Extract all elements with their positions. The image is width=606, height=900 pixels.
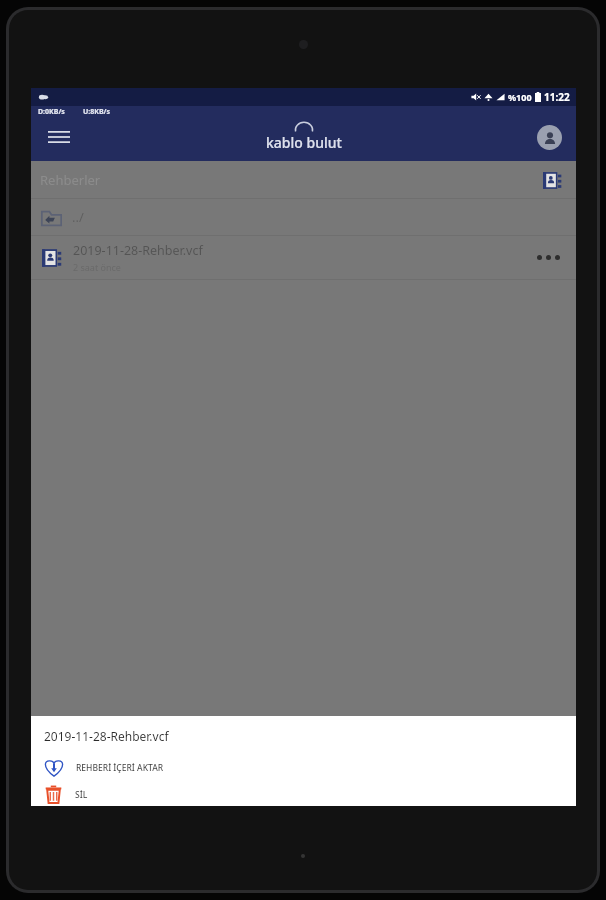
staticText: REHBERİ İÇERİ AKTAR — [76, 762, 164, 774]
staticText: %100 — [508, 91, 532, 103]
staticText: kablo bulut — [266, 133, 342, 152]
staticText: Rehberler — [40, 171, 101, 189]
staticText: 2 saat önce — [73, 261, 121, 273]
staticText: 2019-11-28-Rehber.vcf — [73, 242, 203, 259]
staticText: 11:22 — [544, 90, 570, 104]
button[interactable]: ../ — [31, 199, 576, 235]
button[interactable]: Menü — [39, 117, 79, 157]
staticText: U:8KB/s — [83, 107, 110, 117]
button[interactable]: REHBERİ İÇERİ AKTAR — [31, 753, 576, 783]
button[interactable]: Profil — [532, 120, 566, 154]
button[interactable]: kablo bulut — [266, 121, 342, 152]
staticText: 2019-11-28-Rehber.vcf — [44, 728, 169, 744]
button[interactable]: Rehber ekle — [537, 165, 567, 195]
button[interactable]: Daha fazla — [528, 236, 568, 279]
button[interactable]: 2019-11-28-Rehber.vcf — [31, 236, 576, 279]
staticText: D:0KB/s — [38, 107, 65, 117]
button[interactable]: SİL — [31, 783, 576, 806]
staticText: ../ — [72, 208, 84, 226]
staticText: SİL — [75, 789, 88, 801]
